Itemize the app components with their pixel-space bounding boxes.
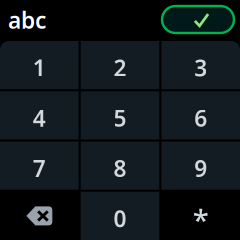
- staticText: abc: [8, 5, 46, 35]
- button[interactable]: abc: [0, 0, 54, 41]
- button[interactable]: 8: [81, 141, 159, 190]
- button[interactable]: 0: [81, 192, 159, 240]
- staticText: 4: [33, 103, 46, 133]
- staticText: 5: [113, 103, 126, 133]
- button[interactable]: 9: [161, 141, 240, 190]
- staticText: 0: [113, 203, 126, 233]
- staticText: *: [193, 200, 209, 239]
- button[interactable]: 5: [81, 91, 159, 139]
- button[interactable]: 6: [161, 91, 240, 139]
- button[interactable]: 1: [0, 41, 79, 89]
- button[interactable]: Done: [162, 6, 240, 35]
- staticText: 7: [33, 153, 46, 183]
- staticText: 8: [113, 153, 126, 183]
- button[interactable]: 2: [81, 41, 159, 89]
- button[interactable]: Star: [161, 192, 240, 240]
- button[interactable]: Delete: [0, 192, 79, 240]
- staticText: 3: [194, 53, 207, 83]
- staticText: 2: [113, 53, 126, 83]
- button[interactable]: 4: [0, 91, 79, 139]
- staticText: 6: [194, 103, 207, 133]
- button[interactable]: 3: [161, 41, 240, 89]
- button[interactable]: 7: [0, 141, 79, 190]
- staticText: 1: [33, 53, 46, 83]
- staticText: 9: [194, 153, 207, 183]
